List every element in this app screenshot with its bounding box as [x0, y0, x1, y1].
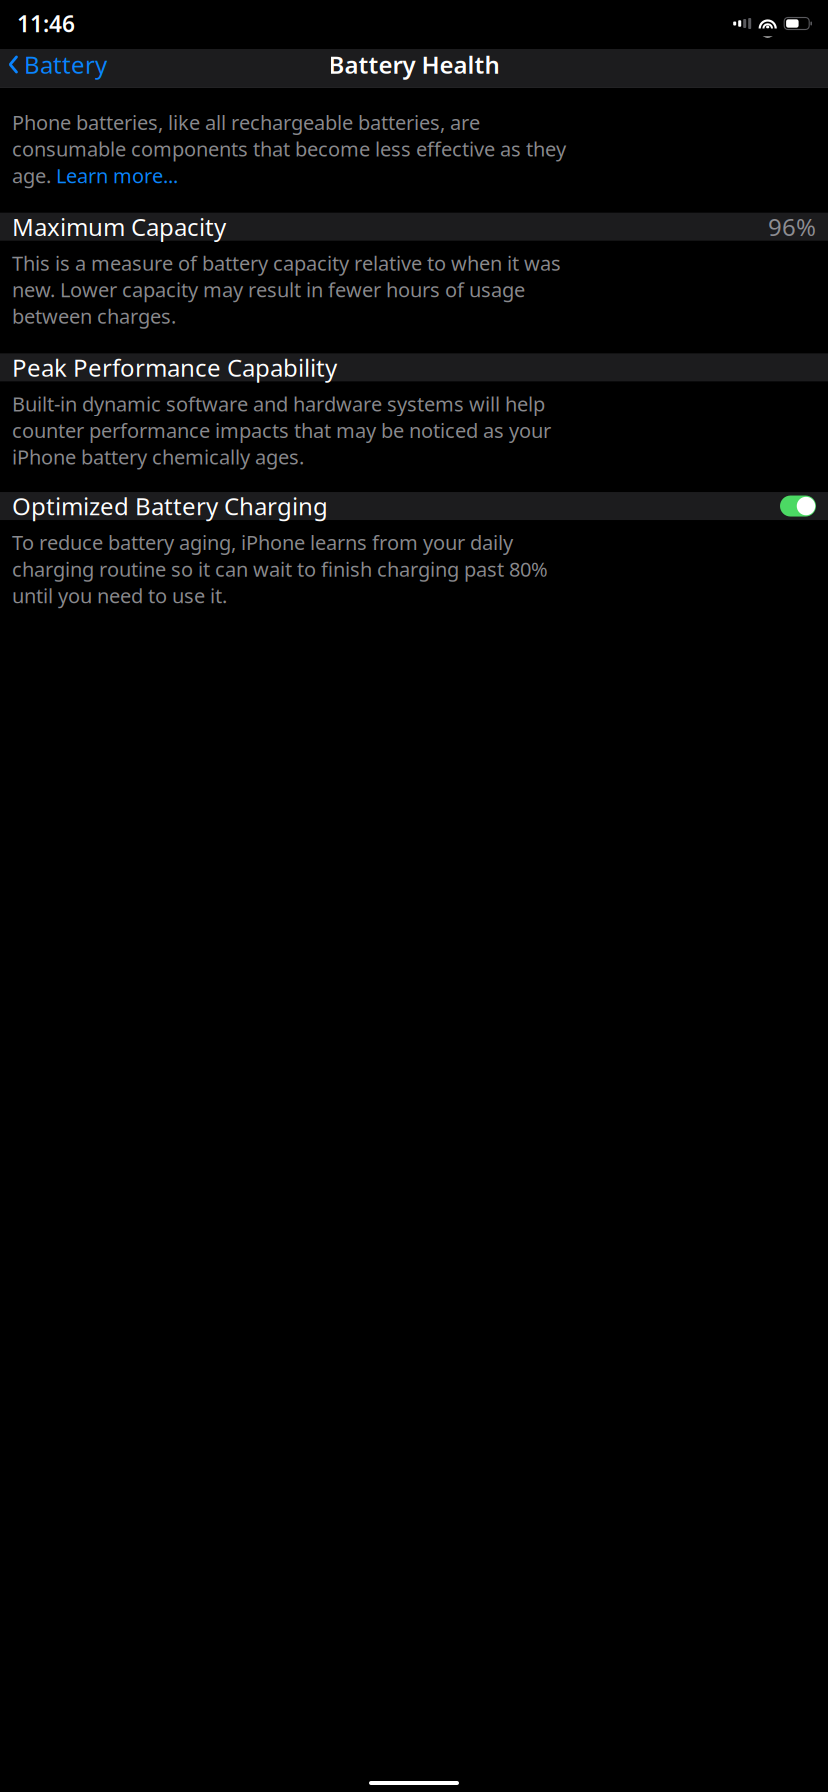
staticText: Optimized Battery Charging: [12, 490, 328, 522]
staticText: Learn more...: [56, 162, 178, 189]
staticText: 96%: [768, 211, 816, 243]
staticText: consumable components that become less e…: [12, 136, 566, 162]
button[interactable]: Battery: [0, 43, 107, 86]
staticText: counter performance impacts that may be …: [12, 417, 551, 443]
staticText: This is a measure of battery capacity re…: [12, 250, 561, 276]
button[interactable]: Learn more...: [56, 162, 178, 189]
staticText: Built-in dynamic software and hardware s…: [12, 390, 545, 417]
staticText: age.: [12, 162, 56, 189]
staticText: Peak Performance Capability: [12, 351, 337, 383]
staticText: Battery Health: [328, 49, 499, 80]
staticText: new. Lower capacity may result in fewer …: [12, 276, 525, 303]
button[interactable]: Optimized Battery Charging: [0, 492, 828, 520]
staticText: 11:46: [17, 8, 75, 38]
staticText: until you need to use it.: [12, 582, 227, 609]
staticText: iPhone battery chemically ages.: [12, 443, 304, 470]
staticText: Battery: [24, 49, 107, 80]
button[interactable]: Peak Performance Capability: [0, 353, 828, 381]
staticText: charging routine so it can wait to finis…: [12, 556, 548, 582]
staticText: between charges.: [12, 303, 176, 329]
staticText: To reduce battery aging, iPhone learns f…: [12, 529, 513, 556]
staticText: Phone batteries, like all rechargeable b…: [12, 109, 480, 136]
staticText: Maximum Capacity: [12, 211, 226, 243]
button[interactable]: Maximum Capacity: [0, 213, 828, 241]
